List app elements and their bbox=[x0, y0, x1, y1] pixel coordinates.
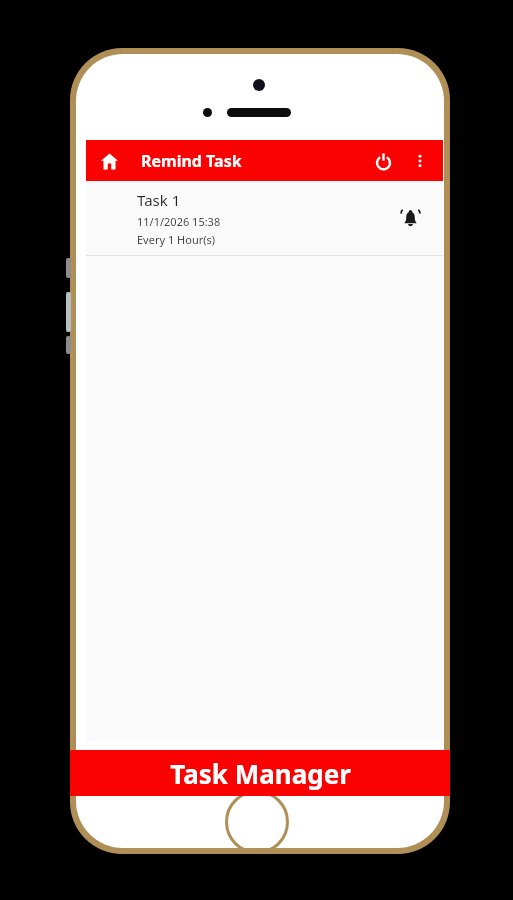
staticText: Task 1 bbox=[137, 190, 181, 210]
button[interactable]: Power bbox=[366, 144, 400, 178]
staticText: Every 1 Hour(s) bbox=[137, 232, 216, 247]
staticText: 11/1/2026 15:38 bbox=[137, 214, 221, 229]
button[interactable]: More options bbox=[403, 144, 437, 178]
button[interactable]: Home bbox=[92, 144, 126, 178]
staticText: Task Manager bbox=[170, 756, 351, 791]
button[interactable]: Task 1 bbox=[86, 181, 443, 256]
button[interactable]: Reminder active bbox=[395, 203, 425, 233]
staticText: Remind Task bbox=[141, 150, 242, 172]
button[interactable]: Task Manager bbox=[70, 750, 450, 796]
